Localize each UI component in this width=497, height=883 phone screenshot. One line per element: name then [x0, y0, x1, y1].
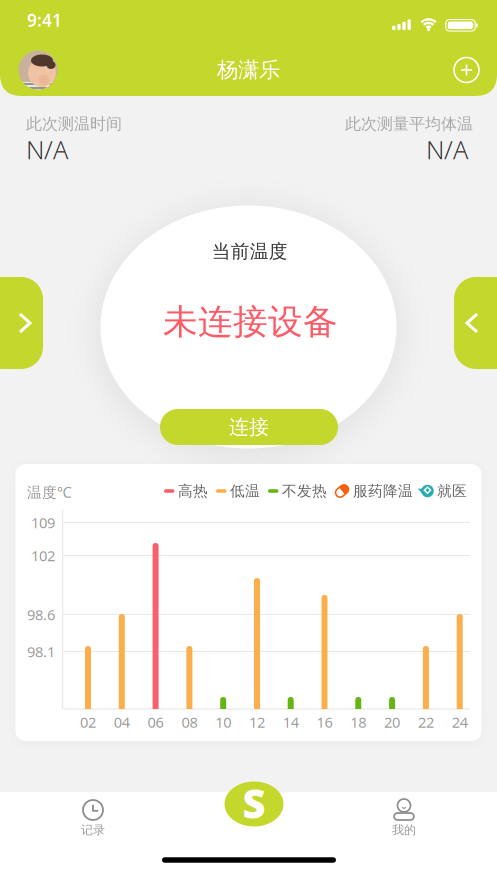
staticText: 此次测量平均体温	[345, 114, 473, 134]
button[interactable]: 我的	[369, 790, 439, 840]
staticText: 18	[350, 712, 366, 732]
button[interactable]	[454, 277, 497, 369]
staticText: 102	[31, 546, 55, 565]
staticText: 连接	[229, 415, 269, 439]
staticText: 我的	[392, 823, 416, 837]
button[interactable]: 记录	[58, 790, 128, 840]
staticText: 当前温度	[212, 240, 288, 263]
staticText: 9:41	[27, 8, 62, 31]
button[interactable]: 连接	[160, 409, 338, 445]
staticText: 记录	[81, 823, 105, 837]
staticText: N/A	[26, 133, 68, 166]
staticText: 就医	[437, 482, 467, 500]
button[interactable]	[18, 50, 57, 89]
button[interactable]	[454, 57, 479, 82]
staticText: 温度℃	[27, 482, 72, 502]
staticText: 此次测温时间	[26, 114, 122, 134]
staticText: 12	[249, 712, 265, 732]
staticText: 杨潇乐	[217, 57, 280, 83]
staticText: 服药降温	[353, 482, 413, 500]
staticText: 22	[418, 712, 434, 732]
staticText: 24	[452, 712, 468, 732]
staticText: N/A	[426, 133, 468, 166]
button[interactable]: S	[224, 781, 283, 826]
staticText: 109	[31, 513, 55, 532]
staticText: 10	[215, 712, 231, 732]
staticText: 02	[80, 712, 96, 732]
staticText: 06	[148, 712, 164, 732]
staticText: 08	[181, 712, 197, 732]
staticText: 16	[316, 712, 332, 732]
staticText: 低温	[230, 482, 260, 500]
staticText: 14	[283, 712, 299, 732]
staticText: 98.6	[27, 605, 55, 624]
staticText: 未连接设备	[163, 301, 338, 343]
staticText: 98.1	[27, 642, 55, 661]
staticText: 高热	[178, 482, 208, 500]
staticText: 不发热	[282, 482, 327, 500]
staticText: S	[242, 776, 265, 829]
staticText: 04	[114, 712, 130, 732]
button[interactable]	[0, 277, 43, 369]
staticText: 20	[384, 712, 400, 732]
